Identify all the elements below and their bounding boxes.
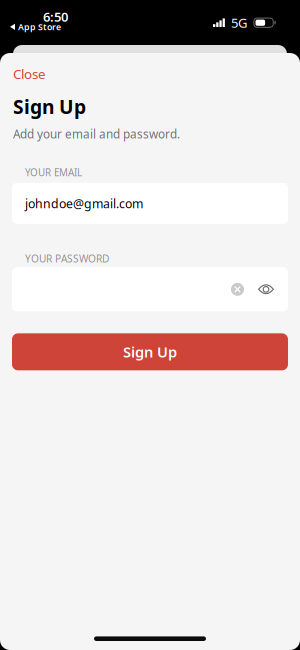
staticText: 5G: [231, 14, 248, 31]
staticText: johndoe@gmail.com: [25, 195, 143, 211]
staticText: Close: [13, 65, 46, 83]
button[interactable]: Close: [0, 53, 56, 88]
button[interactable]: Show password: [255, 283, 277, 295]
staticText: Sign Up: [123, 342, 177, 362]
staticText: Add your email and password.: [13, 126, 180, 142]
staticText: YOUR EMAIL: [25, 166, 82, 179]
staticText: 6:50: [43, 8, 68, 25]
staticText: Sign Up: [13, 94, 86, 119]
button[interactable]: Sign Up: [12, 333, 288, 370]
staticText: App Store: [18, 21, 61, 33]
staticText: YOUR PASSWORD: [25, 252, 109, 265]
button[interactable]: Clear password: [227, 282, 247, 296]
